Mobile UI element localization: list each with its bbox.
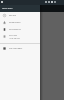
button[interactable]: Recent	[0, 12, 40, 19]
staticText: File Manager	[9, 47, 23, 50]
staticText: Open from	[2, 7, 13, 10]
staticText: 14.86 GB free	[9, 37, 20, 39]
button[interactable]: SD card	[0, 33, 40, 40]
button[interactable]: Downloads	[0, 19, 40, 26]
button[interactable]: File Manager	[0, 45, 40, 52]
staticText: Recent	[9, 14, 17, 17]
button[interactable]: Documents	[0, 26, 40, 33]
staticText: Documents	[9, 28, 21, 31]
staticText: SD card	[9, 34, 17, 37]
staticText: Downloads	[9, 21, 21, 24]
